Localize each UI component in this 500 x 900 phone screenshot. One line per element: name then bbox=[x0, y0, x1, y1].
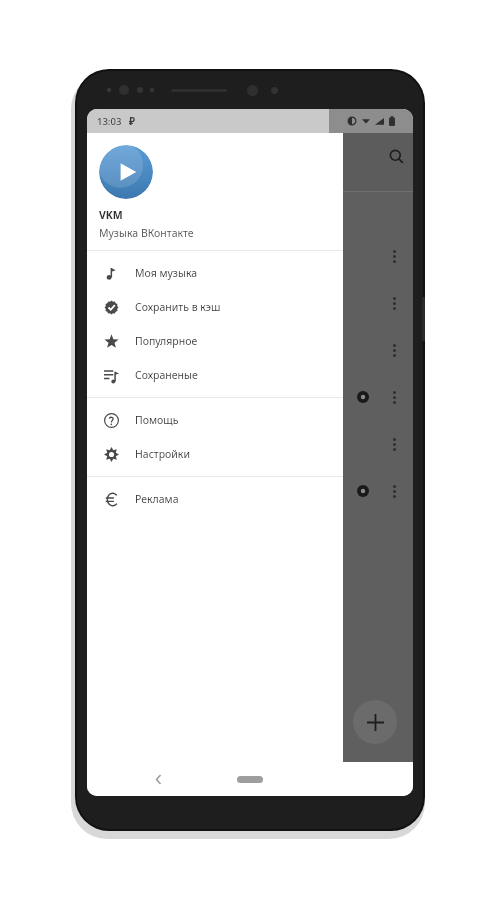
staticText: Моя музыка bbox=[135, 266, 198, 280]
button[interactable]: More options bbox=[87, 421, 413, 467]
button[interactable]: More options bbox=[87, 468, 413, 514]
button[interactable]: More options bbox=[87, 233, 413, 279]
staticText: Реклама bbox=[135, 492, 179, 506]
staticText: Настройки bbox=[135, 447, 190, 461]
staticText: ₽ bbox=[129, 114, 135, 128]
staticText: ДАЦИИ bbox=[93, 169, 130, 183]
button[interactable]: Search bbox=[379, 139, 413, 173]
button[interactable]: More options bbox=[87, 327, 413, 373]
button[interactable]: More options bbox=[383, 468, 405, 514]
button[interactable]: More options bbox=[383, 233, 405, 279]
button[interactable]: Сохранить в кэш bbox=[87, 290, 343, 324]
button[interactable]: More options bbox=[383, 280, 405, 326]
button[interactable]: More options bbox=[87, 280, 413, 326]
staticText: Музыка ВКонтакте bbox=[99, 226, 194, 240]
button[interactable]: Помощь bbox=[87, 403, 343, 437]
staticText: Сохраненые bbox=[135, 368, 198, 382]
button[interactable]: Моя музыка bbox=[87, 256, 343, 290]
button[interactable]: Сохраненые bbox=[87, 358, 343, 392]
staticText: VKM bbox=[99, 208, 123, 222]
staticText: Помощь bbox=[135, 413, 179, 427]
button[interactable]: More options bbox=[383, 327, 405, 373]
staticText: Сохранить в кэш bbox=[135, 300, 221, 314]
button[interactable]: Популярное bbox=[87, 324, 343, 358]
button[interactable]: More options bbox=[87, 374, 413, 420]
button[interactable]: Реклама bbox=[87, 482, 343, 516]
staticText: 13:03 bbox=[97, 115, 122, 128]
button[interactable]: Home bbox=[237, 776, 263, 783]
button[interactable]: Back bbox=[145, 766, 171, 792]
button[interactable]: Настройки bbox=[87, 437, 343, 471]
staticText: Популярное bbox=[135, 334, 198, 348]
button[interactable]: Add bbox=[353, 700, 397, 744]
button[interactable]: More options bbox=[383, 374, 405, 420]
button[interactable]: More options bbox=[383, 421, 405, 467]
